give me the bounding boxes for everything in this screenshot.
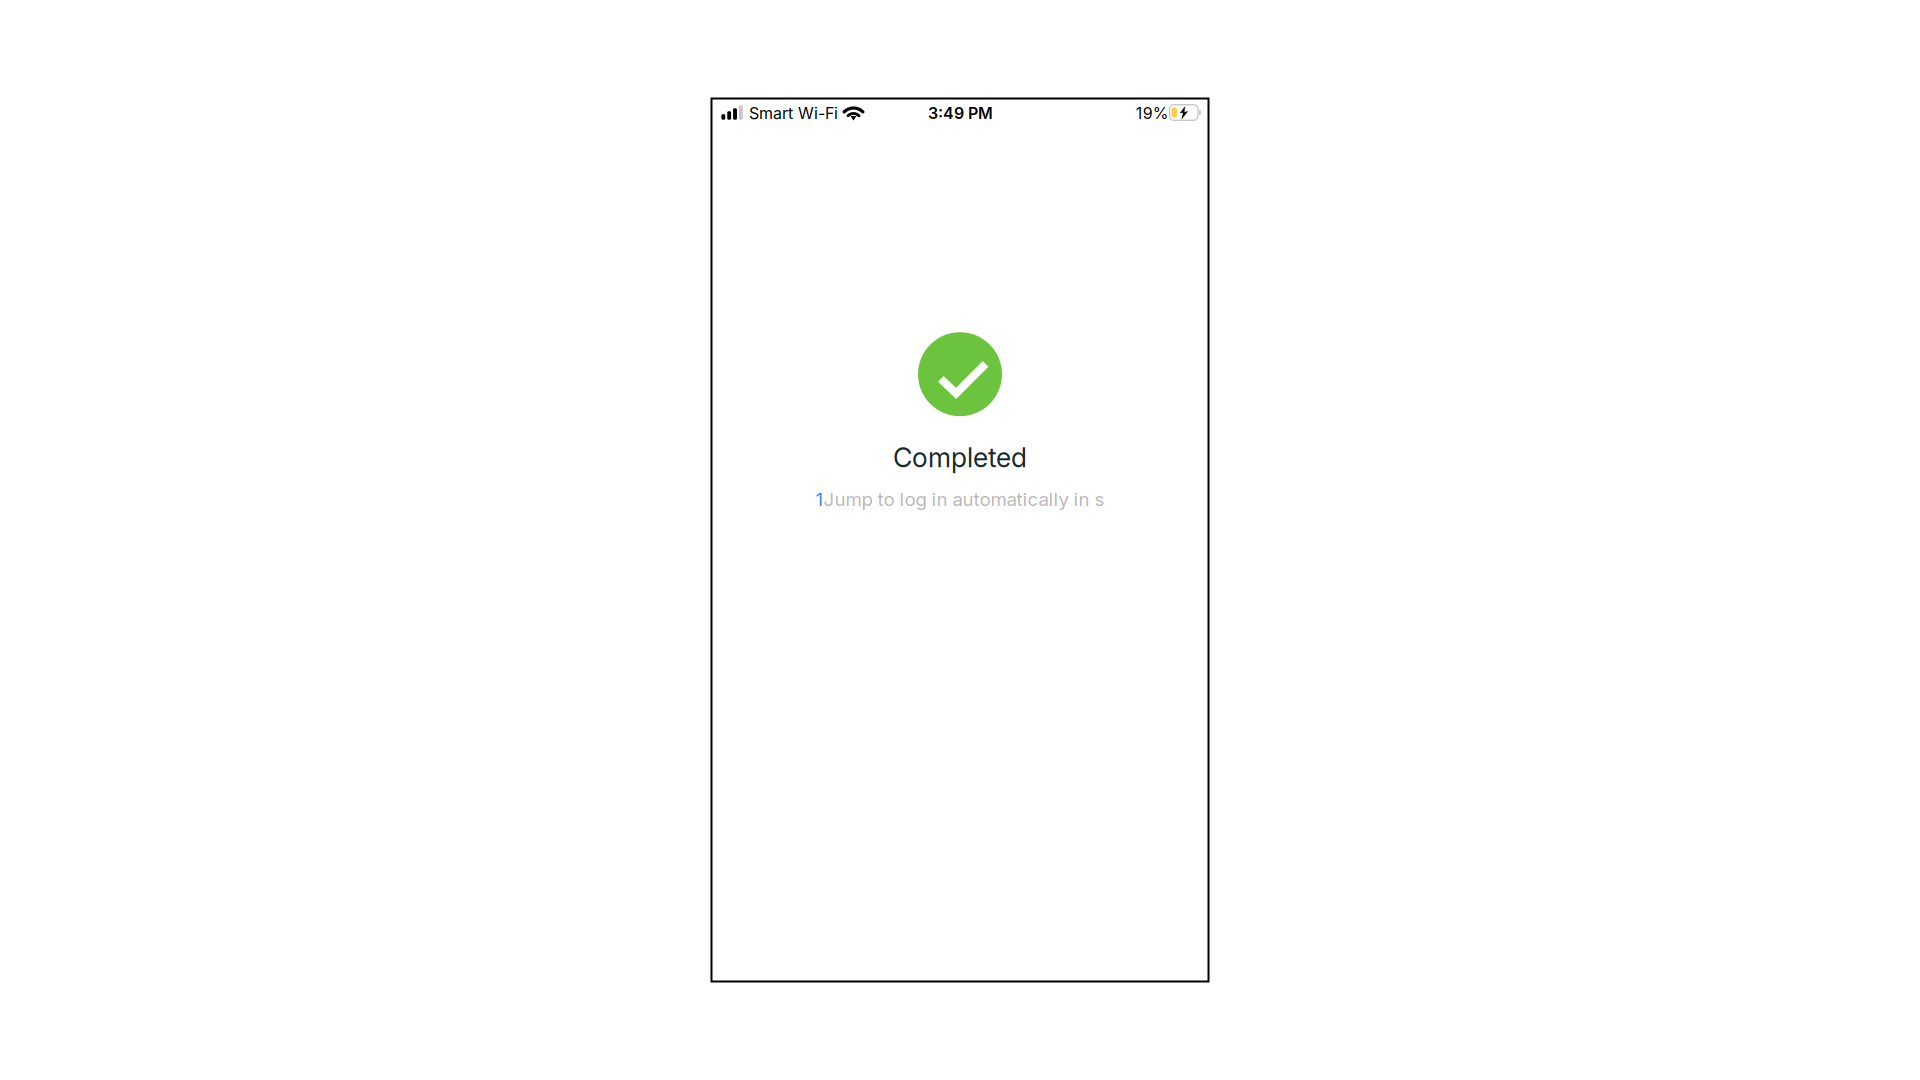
staticText: 1 [815,488,823,510]
staticText: Jump to log in automatically in s [823,488,1104,510]
staticText: 19% [1136,104,1169,123]
button[interactable]: 1 [815,488,1104,510]
staticText: Smart Wi-Fi [749,104,838,123]
staticText: 3:49 PM [928,104,993,123]
staticText: Completed [893,441,1027,474]
